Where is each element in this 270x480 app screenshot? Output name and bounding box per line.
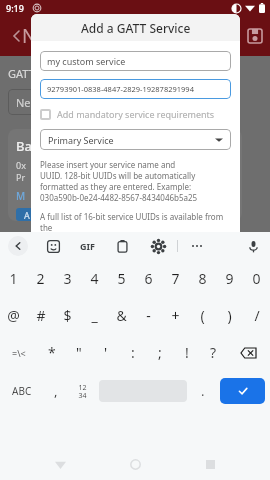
button[interactable]: -: [135, 297, 162, 334]
staticText: :: [131, 343, 135, 362]
button[interactable]: Back: [8, 236, 28, 256]
staticText: 0x: [16, 159, 26, 171]
button[interactable]: ;: [146, 334, 173, 371]
button[interactable]: 8: [189, 260, 216, 297]
staticText: ": [76, 343, 82, 362]
staticText: =\<: [12, 347, 26, 359]
button[interactable]: $: [54, 297, 81, 334]
staticText: 4: [90, 269, 99, 288]
staticText: my custom service: [47, 55, 126, 67]
staticText: #: [36, 306, 46, 325]
button[interactable]: ): [216, 297, 243, 334]
staticText: Pr: [16, 171, 26, 183]
staticText: Ne: [16, 95, 31, 110]
button[interactable]: Clipboard: [113, 237, 131, 255]
button[interactable]: Cancel: [109, 252, 162, 275]
staticText: !: [185, 343, 189, 362]
staticText: GIF: [80, 240, 95, 252]
button[interactable]: ABC: [0, 371, 43, 411]
button[interactable]: ': [92, 334, 119, 371]
staticText: 0: [252, 269, 261, 288]
button[interactable]: Backspace: [227, 334, 270, 371]
staticText: 9: [225, 269, 234, 288]
staticText: 92793901-0838-4847-2829-192878291994: [47, 84, 194, 94]
staticText: 8: [198, 269, 207, 288]
button[interactable]: 12 34: [68, 371, 96, 411]
button[interactable]: @: [0, 297, 27, 334]
button[interactable]: 92793901-0838-4847-2829-192878291994: [40, 79, 231, 99]
button[interactable]: 1: [0, 260, 27, 297]
button[interactable]: !: [173, 334, 200, 371]
button[interactable]: Primary Service: [40, 129, 231, 150]
button[interactable]: _: [81, 297, 108, 334]
button[interactable]: ": [65, 334, 92, 371]
staticText: ;: [158, 343, 162, 362]
staticText: ABC: [12, 384, 32, 398]
staticText: /: [254, 306, 260, 325]
button[interactable]: Clear: [55, 252, 101, 275]
staticText: 6: [144, 269, 153, 288]
button[interactable]: 4: [81, 260, 108, 297]
button[interactable]: /: [243, 297, 270, 334]
button[interactable]: Home: [120, 449, 150, 479]
staticText: Please insert your service name and UUID…: [40, 159, 198, 203]
button[interactable]: ?: [200, 334, 227, 371]
button[interactable]: ,: [43, 371, 68, 411]
staticText: (: [200, 306, 205, 325]
button[interactable]: Voice input: [244, 237, 262, 255]
button[interactable]: Settings: [149, 237, 167, 255]
button[interactable]: +: [162, 297, 189, 334]
staticText: 1: [9, 269, 18, 288]
staticText: 2: [36, 269, 45, 288]
staticText: A: [24, 209, 30, 221]
staticText: Ba: [16, 137, 32, 155]
button[interactable]: &: [108, 297, 135, 334]
staticText: Primary Service: [48, 134, 114, 146]
button[interactable]: 6: [135, 260, 162, 297]
staticText: .: [201, 382, 205, 400]
staticText: 3: [63, 269, 72, 288]
other: Back: [6, 26, 26, 46]
staticText: ): [227, 306, 232, 325]
button[interactable]: Add mandatory service requirements: [40, 108, 231, 120]
staticText: +: [171, 306, 180, 325]
staticText: ?: [210, 343, 217, 362]
button[interactable]: Recents: [195, 449, 225, 479]
button[interactable]: 0: [243, 260, 270, 297]
button[interactable]: 5: [108, 260, 135, 297]
button[interactable]: 2: [27, 260, 54, 297]
button[interactable]: .: [190, 371, 215, 411]
button[interactable]: Save: [170, 251, 231, 276]
button[interactable]: 7: [162, 260, 189, 297]
staticText: 5: [117, 269, 126, 288]
button[interactable]: (: [189, 297, 216, 334]
staticText: $: [63, 306, 72, 325]
staticText: ,: [54, 382, 58, 400]
staticText: ': [104, 343, 108, 362]
staticText: 9:19: [6, 2, 24, 14]
button[interactable]: =\<: [0, 334, 38, 371]
staticText: *: [48, 343, 56, 362]
button[interactable]: Enter: [220, 378, 265, 404]
staticText: A full list of 16-bit service UUIDs is a…: [40, 211, 231, 244]
staticText: M: [16, 189, 26, 203]
button[interactable]: Stickers: [44, 237, 62, 255]
button[interactable]: my custom service: [40, 51, 231, 71]
button[interactable]: *: [38, 334, 65, 371]
button[interactable]: More options: [188, 237, 206, 255]
button[interactable]: 3: [54, 260, 81, 297]
staticText: 7: [171, 269, 180, 288]
staticText: Add a GATT Service: [81, 20, 191, 36]
button[interactable]: Back: [45, 449, 75, 479]
button[interactable]: :: [119, 334, 146, 371]
staticText: Add mandatory service requirements: [57, 108, 215, 120]
staticText: Ne: [22, 23, 48, 49]
button[interactable]: #: [27, 297, 54, 334]
button[interactable]: 9: [216, 260, 243, 297]
staticText: GATT: [8, 66, 35, 81]
button[interactable]: GIF: [80, 240, 95, 252]
